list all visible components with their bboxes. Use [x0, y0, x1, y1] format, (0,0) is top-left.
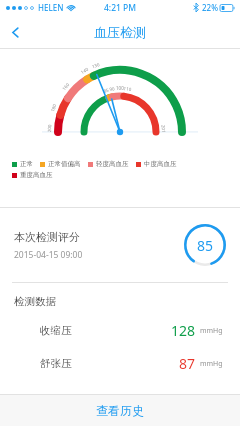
staticText: 查看历史 [96, 403, 144, 418]
staticText: 重度高血压 [20, 171, 53, 179]
staticText: 128 [171, 321, 196, 340]
staticText: 正常值偏高 [48, 160, 81, 168]
staticText: 22% [202, 2, 218, 13]
staticText: HELEN [38, 2, 64, 13]
button[interactable]: Back [0, 17, 30, 47]
staticText: mmHg [200, 359, 223, 369]
button[interactable]: 查看历史 [0, 395, 240, 426]
staticText: 85 [197, 236, 214, 255]
staticText: 本次检测评分 [14, 230, 80, 244]
staticText: 中度高血压 [144, 160, 177, 168]
staticText: 正常 [20, 160, 33, 168]
staticText: 87 [179, 354, 196, 373]
staticText: 收缩压 [40, 324, 72, 337]
staticText: 4:21 PM [104, 2, 137, 14]
staticText: 2015-04-15 09:00 [14, 249, 83, 261]
staticText: mmHg [200, 326, 223, 336]
staticText: 检测数据 [14, 295, 56, 308]
staticText: 轻度高血压 [96, 160, 129, 168]
staticText: 血压检测 [94, 24, 146, 40]
staticText: 舒张压 [40, 357, 72, 370]
